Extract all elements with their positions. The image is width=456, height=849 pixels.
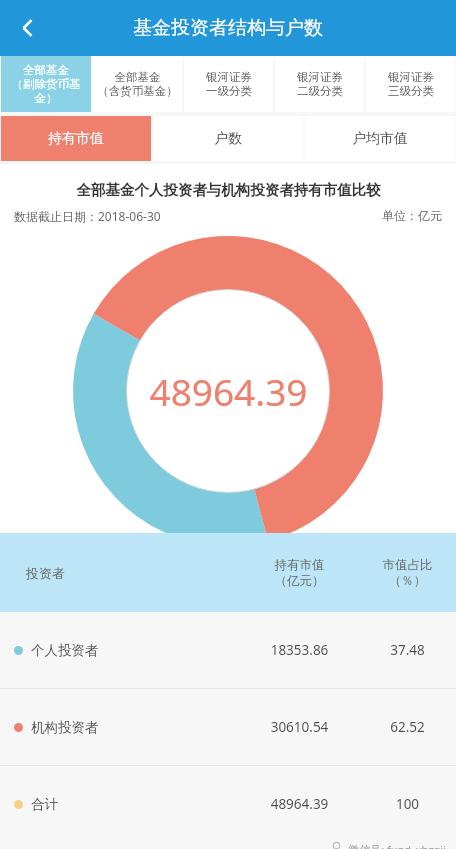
staticText: 个人投资者 xyxy=(31,642,99,659)
button[interactable]: 全部基金 （含货币基金） xyxy=(93,56,182,112)
staticText: 投资者 xyxy=(26,565,240,581)
staticText: 18353.86 xyxy=(240,641,359,659)
staticText: 微信号: fund_yhzqjj xyxy=(348,842,446,849)
staticText: 30610.54 xyxy=(240,718,359,736)
staticText: 单位：亿元 xyxy=(382,208,442,223)
staticText: 全部基金 （剔除货币基金） xyxy=(3,63,89,106)
staticText: 基金投资者结构与户数 xyxy=(133,16,323,40)
button[interactable]: 持有市值 xyxy=(1,116,151,161)
staticText: 银河证券 三级分类 xyxy=(388,70,434,99)
staticText: 62.52 xyxy=(359,718,456,736)
button[interactable]: 户数 xyxy=(153,116,303,161)
button[interactable]: Back xyxy=(0,0,56,56)
staticText: 持有市值 xyxy=(48,130,104,148)
staticText: 机构投资者 xyxy=(31,719,99,736)
staticText: 银河证券 二级分类 xyxy=(297,70,343,99)
button[interactable]: 合计 xyxy=(0,766,456,842)
staticText: 数据截止日期：2018-06-30 xyxy=(14,208,161,224)
staticText: 户数 xyxy=(214,130,242,148)
staticText: 48964.39 xyxy=(240,795,359,813)
staticText: 合计 xyxy=(31,796,58,813)
staticText: 银河证券 一级分类 xyxy=(206,70,252,99)
staticText: 48964.39 xyxy=(149,366,308,416)
button[interactable]: 全部基金 （剔除货币基金） xyxy=(1,56,91,112)
button[interactable]: 户均市值 xyxy=(305,116,455,161)
staticText: 市值占比 （％） xyxy=(359,557,456,589)
staticText: 37.48 xyxy=(359,641,456,659)
staticText: 全部基金 （含货币基金） xyxy=(97,70,178,99)
staticText: 100 xyxy=(359,795,456,813)
button[interactable]: 机构投资者 xyxy=(0,689,456,765)
staticText: 持有市值 （亿元） xyxy=(240,557,359,589)
staticText: 全部基金个人投资者与机构投资者持有市值比较 xyxy=(76,181,381,199)
button[interactable]: 银河证券 二级分类 xyxy=(275,56,364,112)
button[interactable]: 个人投资者 xyxy=(0,612,456,688)
button[interactable]: 银河证券 一级分类 xyxy=(184,56,273,112)
button[interactable]: 银河证券 三级分类 xyxy=(366,56,455,112)
staticText: 户均市值 xyxy=(352,130,408,148)
